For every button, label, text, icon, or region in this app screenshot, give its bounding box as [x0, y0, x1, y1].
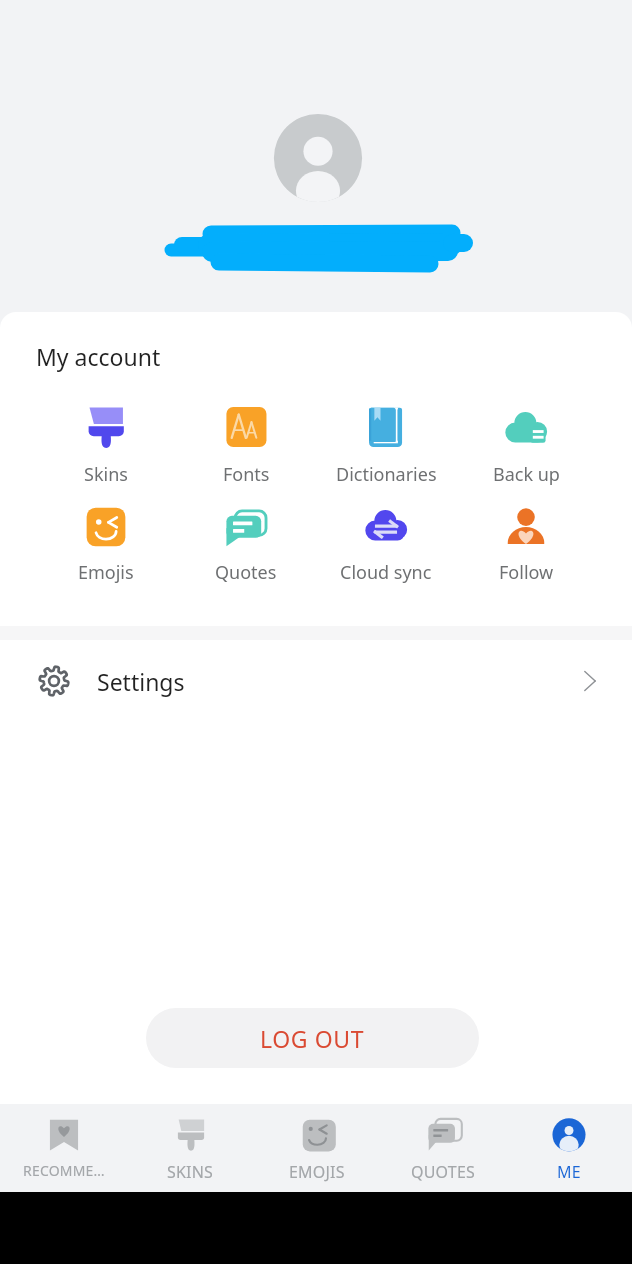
button[interactable]: Fonts [176, 407, 316, 487]
staticText: QUOTES [411, 1161, 475, 1183]
staticText: SKINS [167, 1161, 214, 1183]
button[interactable]: Emojis [36, 505, 176, 585]
button[interactable]: Quotes [176, 505, 316, 585]
button[interactable]: Settings [0, 640, 632, 722]
staticText: EMOJIS [289, 1161, 345, 1183]
staticText: LOG OUT [260, 1023, 365, 1054]
staticText: Emojis [78, 560, 134, 585]
button[interactable]: Cloud sync [316, 505, 456, 585]
staticText: Dictionaries [336, 462, 437, 487]
staticText: Skins [84, 462, 128, 487]
button[interactable]: Skins [36, 407, 176, 487]
staticText: Fonts [223, 462, 270, 487]
button[interactable]: Back up [456, 407, 596, 487]
button[interactable]: Dictionaries [316, 407, 456, 487]
button[interactable]: ME [506, 1104, 632, 1192]
button[interactable]: SKINS [127, 1104, 254, 1192]
button[interactable]: RECOMME… [0, 1104, 127, 1192]
staticText: RECOMME… [23, 1161, 105, 1180]
staticText: Quotes [215, 560, 277, 585]
staticText: Settings [97, 666, 185, 697]
button[interactable]: QUOTES [380, 1104, 506, 1192]
staticText: Cloud sync [340, 560, 432, 585]
staticText: ME [557, 1161, 581, 1183]
button[interactable]: EMOJIS [254, 1104, 380, 1192]
staticText: My account [36, 341, 161, 372]
staticText: Follow [499, 560, 554, 585]
button[interactable]: Profile photo [273, 113, 363, 203]
staticText: Back up [493, 462, 560, 487]
button[interactable]: LOG OUT [146, 1008, 479, 1068]
button[interactable]: Follow [456, 505, 596, 585]
